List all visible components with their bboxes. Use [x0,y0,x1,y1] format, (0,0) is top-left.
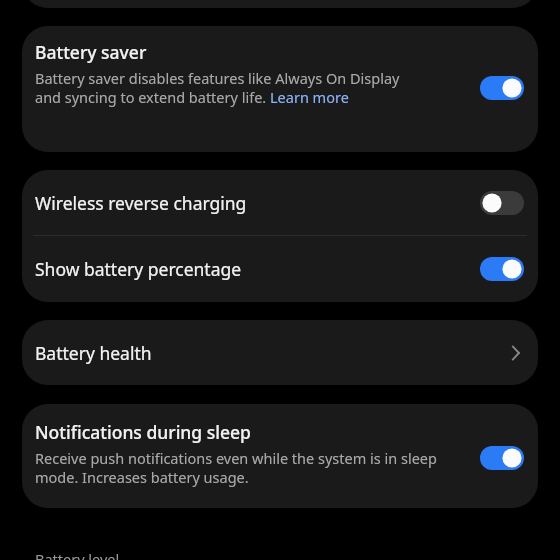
staticText: Wireless reverse charging [35,191,480,215]
button[interactable]: Switch on [480,446,524,470]
staticText: Battery saver disables features like Alw… [35,68,427,108]
button[interactable]: Switch off [480,191,524,215]
staticText: Battery level [35,549,120,560]
staticText: Battery health [35,341,502,365]
staticText: Battery saver [35,40,147,64]
button[interactable]: Battery health [22,320,538,385]
button[interactable]: Switch on [480,76,524,100]
button[interactable]: Wireless reverse charging [22,170,538,235]
button[interactable]: Battery saver [22,26,538,152]
button[interactable]: Switch on [480,257,524,281]
staticText: Receive push notifications even while th… [35,448,477,488]
staticText: Notifications during sleep [35,420,251,444]
button[interactable]: Show battery percentage [22,236,538,302]
staticText: Show battery percentage [35,257,480,281]
button[interactable]: Notifications during sleep [22,404,538,508]
button[interactable]: Battery health details [502,339,530,367]
